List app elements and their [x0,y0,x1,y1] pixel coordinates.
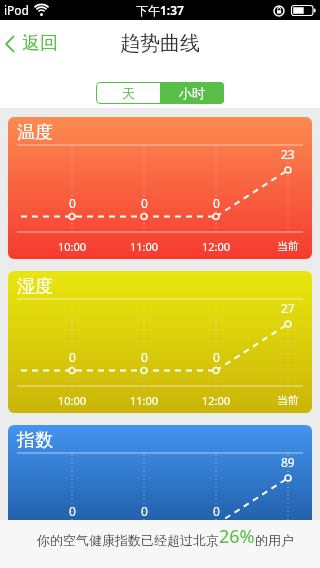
staticText: 27 [281,300,295,316]
staticText: 0 [213,349,220,365]
staticText: 趋势曲线 [120,31,200,56]
staticText: 的用户 [255,532,294,548]
staticText: 小时 [179,85,205,101]
button[interactable]: 小时 [160,82,224,104]
staticText: 11:00 [130,393,159,408]
button[interactable]: 天 [96,82,160,104]
staticText: 0 [141,349,148,365]
staticText: iPod [4,2,29,18]
staticText: 12:00 [202,393,231,408]
staticText: 0 [141,195,148,211]
staticText: 指数 [17,429,53,452]
staticText: 0 [69,349,76,365]
staticText: 当前 [277,239,299,253]
staticText: 温度 [17,121,53,144]
staticText: 0 [69,503,76,519]
staticText: 10:00 [58,393,87,408]
button[interactable]: 温度 [8,117,312,259]
button[interactable]: 返回 [4,32,58,55]
staticText: 10:00 [58,239,87,254]
staticText: 下午1:37 [136,2,184,18]
staticText: 23 [281,146,295,162]
staticText: 你的空气健康指数已经超过北京 [37,532,219,548]
staticText: 11:00 [130,239,159,254]
staticText: 12:00 [202,239,231,254]
staticText: 返回 [22,32,58,55]
staticText: 当前 [277,393,299,407]
staticText: 89 [281,454,295,470]
staticText: 0 [213,503,220,519]
button[interactable]: 指数 [8,425,312,567]
staticText: 天 [122,85,135,101]
button[interactable]: 你的空气健康指数已经超过北京 [0,520,320,568]
staticText: 0 [69,195,76,211]
staticText: 0 [141,503,148,519]
staticText: 26% [219,524,255,549]
staticText: 湿度 [17,275,53,298]
staticText: 0 [213,195,220,211]
button[interactable]: 湿度 [8,271,312,413]
